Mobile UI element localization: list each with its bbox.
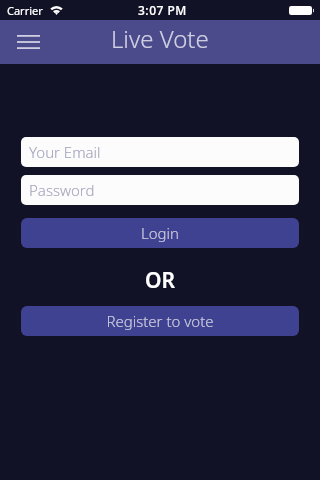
staticText: Login xyxy=(141,223,179,243)
button[interactable]: Login xyxy=(21,218,299,248)
staticText: Carrier xyxy=(7,3,43,18)
other: Wi-Fi signal xyxy=(50,6,63,15)
staticText: Register to vote xyxy=(106,311,214,331)
staticText: Your Email xyxy=(29,142,101,162)
button[interactable]: Password xyxy=(21,175,299,205)
button[interactable]: Open navigation menu xyxy=(10,20,47,64)
button[interactable]: Register to vote xyxy=(21,306,299,336)
staticText: 3:07 PM xyxy=(138,2,187,18)
staticText: Password xyxy=(29,180,95,200)
staticText: OR xyxy=(145,266,176,295)
other: Battery full xyxy=(289,6,314,15)
staticText: Live Vote xyxy=(111,22,209,55)
button[interactable]: Your Email xyxy=(21,137,299,167)
